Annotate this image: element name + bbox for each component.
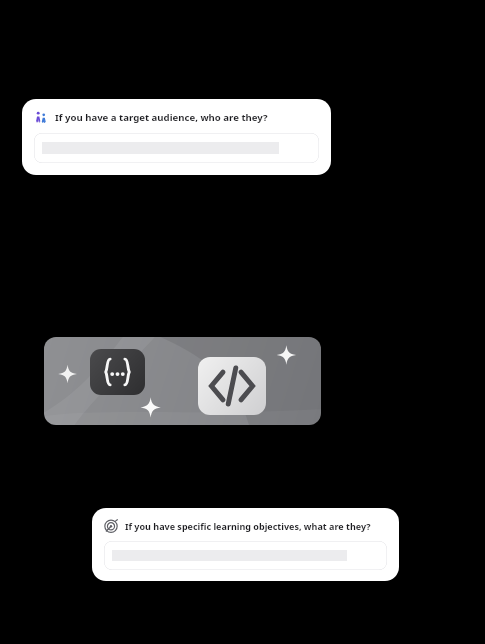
button[interactable] bbox=[90, 349, 145, 395]
staticText: If you have specific learning objectives… bbox=[125, 520, 371, 532]
button[interactable]: If you have specific learning objectives… bbox=[92, 508, 399, 581]
button[interactable]: If you have a target audience, who are t… bbox=[22, 99, 331, 175]
button[interactable] bbox=[34, 133, 319, 163]
button[interactable]: Code generation bbox=[44, 337, 321, 425]
button[interactable] bbox=[198, 357, 266, 415]
staticText: If you have a target audience, who are t… bbox=[55, 111, 268, 124]
button[interactable] bbox=[104, 541, 387, 570]
